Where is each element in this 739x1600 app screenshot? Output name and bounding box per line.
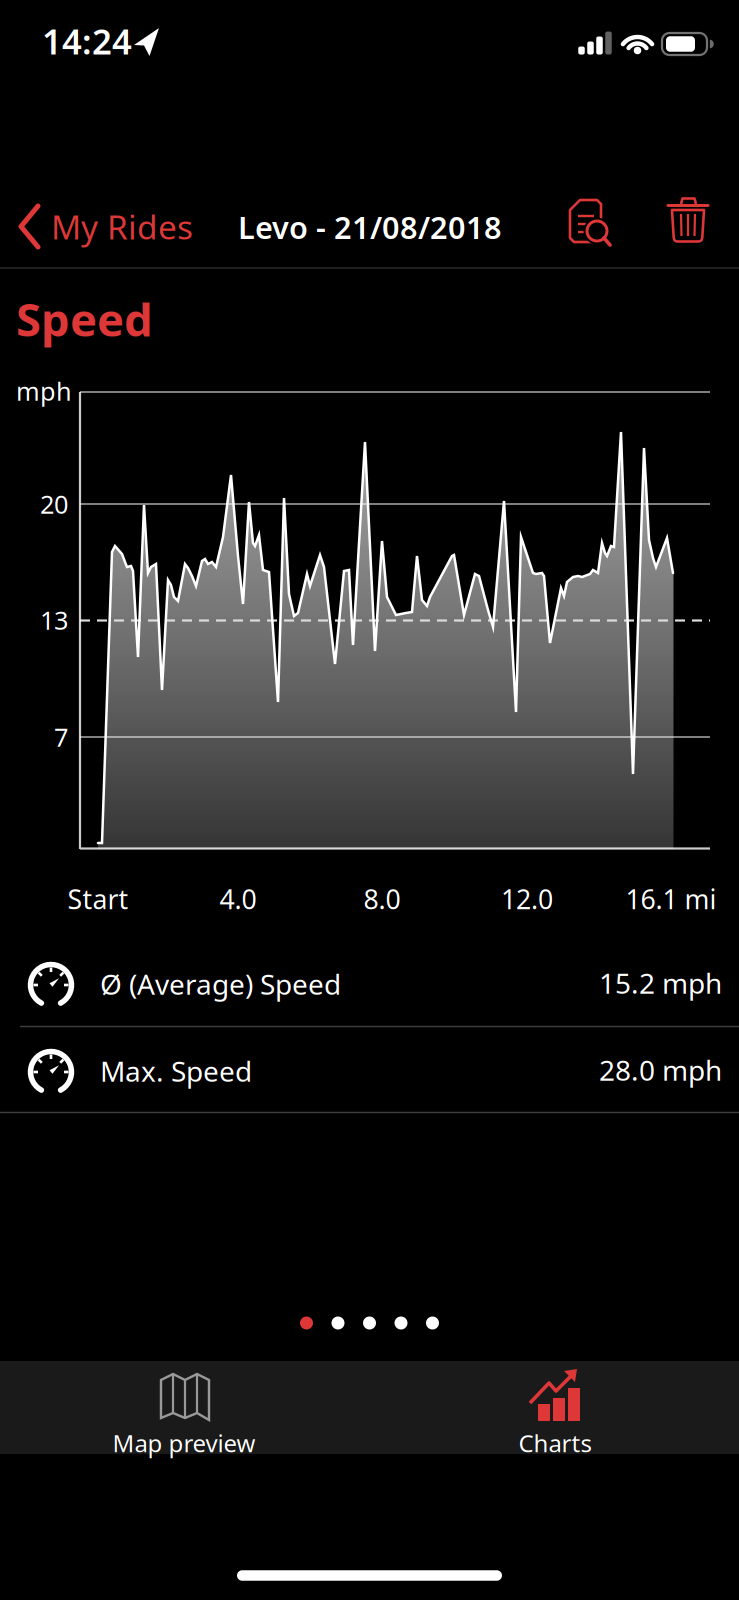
staticText: Levo - 21/08/2018: [238, 207, 502, 247]
button[interactable]: Delete ride: [659, 194, 715, 250]
staticText: Max. Speed: [100, 1052, 252, 1090]
staticText: 28.0 mph: [599, 1051, 722, 1089]
staticText: 4.0: [219, 881, 256, 917]
staticText: Map preview: [112, 1427, 255, 1459]
staticText: Charts: [518, 1427, 591, 1459]
staticText: 16.1 mi: [625, 881, 716, 917]
button[interactable]: My Rides: [12, 198, 197, 256]
staticText: 13: [40, 603, 68, 637]
button[interactable]: Map preview: [14, 1361, 354, 1454]
staticText: 14:24: [42, 18, 132, 64]
staticText: Speed: [16, 289, 153, 349]
staticText: 7: [54, 720, 68, 754]
button[interactable]: Export report: [557, 194, 613, 250]
staticText: mph: [16, 374, 72, 408]
staticText: Start: [67, 881, 128, 917]
staticText: Ø (Average) Speed: [100, 965, 341, 1003]
staticText: 15.2 mph: [599, 964, 722, 1002]
staticText: 8.0: [363, 881, 400, 917]
staticText: 12.0: [501, 881, 553, 917]
button[interactable]: Charts: [384, 1361, 724, 1454]
staticText: My Rides: [51, 204, 193, 249]
staticText: 20: [40, 487, 68, 521]
